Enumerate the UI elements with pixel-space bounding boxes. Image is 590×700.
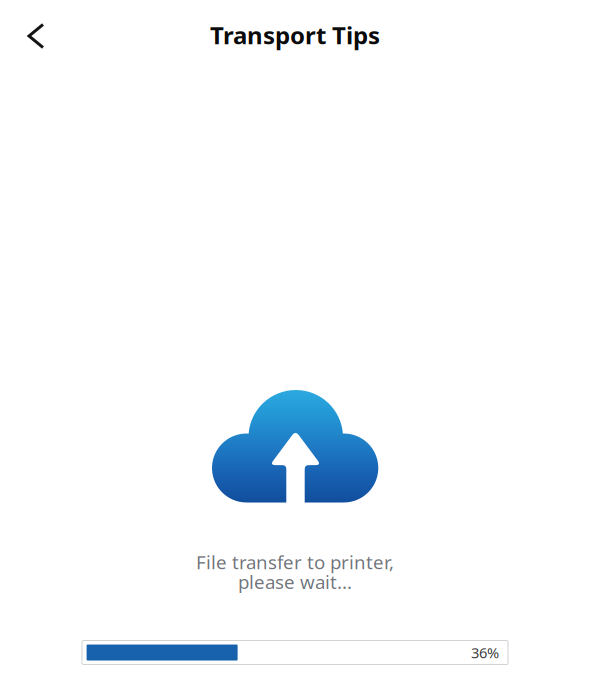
staticText: Transport Tips — [210, 19, 380, 51]
staticText: File transfer to printer, — [196, 549, 394, 574]
button[interactable]: Back — [0, 12, 59, 59]
staticText: please wait... — [238, 569, 352, 594]
staticText: 36% — [471, 643, 499, 662]
